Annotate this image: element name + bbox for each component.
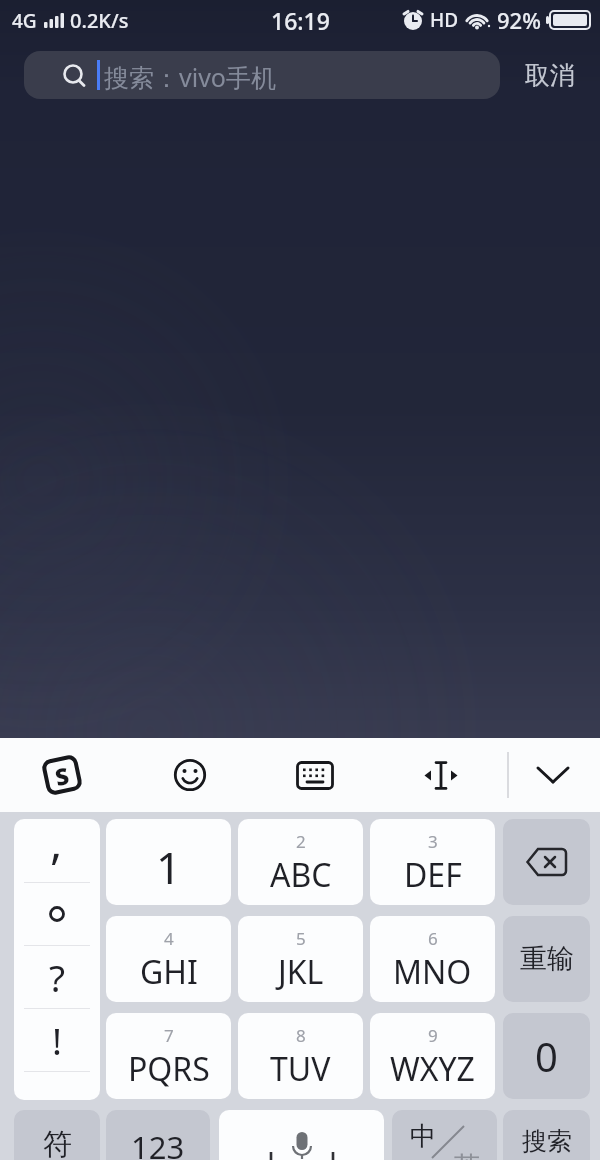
button[interactable]: 2 xyxy=(238,819,363,905)
button[interactable]: 重输 xyxy=(503,916,590,1002)
button[interactable] xyxy=(503,819,590,905)
button[interactable] xyxy=(296,761,334,790)
staticText: 123 xyxy=(131,1126,185,1160)
staticText: ! xyxy=(52,1015,62,1065)
staticText: 0.2K/s xyxy=(70,7,129,34)
button[interactable]: 123 xyxy=(106,1110,210,1160)
button[interactable] xyxy=(173,758,207,792)
staticText: 9 xyxy=(428,1024,438,1047)
staticText: 搜索 xyxy=(522,1126,572,1157)
staticText: ABC xyxy=(270,853,332,897)
staticText: 92% xyxy=(497,5,541,35)
staticText: S xyxy=(52,759,72,792)
staticText: 4G xyxy=(12,8,37,34)
staticText: JKL xyxy=(278,950,324,994)
staticText: 重输 xyxy=(520,942,574,976)
staticText: 7 xyxy=(164,1024,174,1047)
button[interactable]: , xyxy=(14,819,100,882)
staticText: 8 xyxy=(296,1024,306,1047)
staticText: 16:19 xyxy=(271,5,330,36)
staticText: PQRS xyxy=(128,1047,210,1091)
staticText: 0 xyxy=(535,1029,558,1083)
staticText: HD xyxy=(430,7,459,33)
staticText: 英 xyxy=(454,1150,480,1160)
staticText: 中 xyxy=(410,1120,436,1153)
button[interactable] xyxy=(14,882,100,945)
button[interactable]: 0 xyxy=(503,1013,590,1099)
staticText: TUV xyxy=(270,1047,331,1091)
button[interactable]: 5 xyxy=(238,916,363,1002)
button[interactable]: ? xyxy=(14,945,100,1008)
button[interactable]: 取消 xyxy=(505,51,595,99)
button[interactable]: ! xyxy=(14,1008,100,1071)
button[interactable]: 1 xyxy=(106,819,231,905)
staticText: 取消 xyxy=(525,60,575,91)
button[interactable]: 4 xyxy=(106,916,231,1002)
button[interactable]: 6 xyxy=(370,916,495,1002)
staticText: 3 xyxy=(428,830,438,853)
button[interactable]: 3 xyxy=(370,819,495,905)
staticText: MNO xyxy=(393,950,472,994)
button[interactable]: 8 xyxy=(238,1013,363,1099)
button[interactable]: 7 xyxy=(106,1013,231,1099)
staticText: 5 xyxy=(296,927,306,950)
staticText: 4 xyxy=(164,927,174,950)
staticText: 6 xyxy=(428,927,438,950)
button[interactable] xyxy=(536,766,570,785)
button[interactable]: 中 xyxy=(392,1110,497,1160)
button[interactable]: 9 xyxy=(370,1013,495,1099)
button[interactable]: 符 xyxy=(14,1110,100,1160)
button[interactable]: S xyxy=(41,754,83,796)
staticText: 搜索：vivo手机 xyxy=(104,60,276,94)
button[interactable] xyxy=(421,760,461,791)
button[interactable]: 搜索：vivo手机 xyxy=(24,51,500,99)
staticText: 2 xyxy=(296,830,306,853)
button[interactable]: 搜索 xyxy=(503,1110,590,1160)
staticText: , xyxy=(50,819,63,873)
staticText: 1 xyxy=(156,837,182,897)
staticText: GHI xyxy=(140,950,198,994)
staticText: DEF xyxy=(404,853,462,897)
button[interactable] xyxy=(219,1110,384,1160)
staticText: WXYZ xyxy=(390,1047,475,1091)
staticText: 符 xyxy=(43,1126,72,1160)
staticText: ? xyxy=(49,952,66,1002)
